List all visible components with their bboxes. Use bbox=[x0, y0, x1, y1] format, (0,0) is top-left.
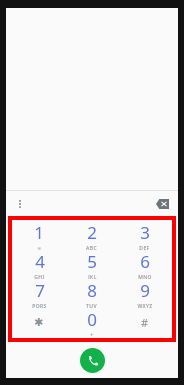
staticText: 6 bbox=[140, 250, 150, 273]
staticText: 5 bbox=[87, 250, 97, 273]
staticText: 8 bbox=[87, 279, 97, 302]
button[interactable]: 3 bbox=[118, 221, 171, 250]
staticText: TUV bbox=[86, 303, 97, 308]
button[interactable]: 5 bbox=[65, 250, 118, 279]
button[interactable]: 6 bbox=[118, 250, 171, 279]
button[interactable]: 9 bbox=[118, 279, 171, 308]
staticText: ABC bbox=[86, 245, 97, 250]
staticText: 4 bbox=[35, 250, 45, 273]
staticText: MNO bbox=[138, 274, 152, 279]
staticText: DEF bbox=[139, 245, 150, 250]
staticText: JKL bbox=[88, 274, 97, 279]
staticText: PQRS bbox=[32, 303, 47, 308]
staticText: + bbox=[90, 332, 94, 337]
button[interactable]: 1 bbox=[13, 221, 65, 250]
staticText: WXYZ bbox=[137, 303, 153, 308]
button[interactable]: 2 bbox=[65, 221, 118, 250]
staticText: 9 bbox=[140, 279, 150, 302]
staticText: # bbox=[141, 315, 149, 330]
button[interactable]: 4 bbox=[13, 250, 65, 279]
button[interactable]: Call bbox=[80, 348, 105, 373]
button[interactable]: ✱ bbox=[13, 308, 65, 337]
staticText: 1 bbox=[34, 221, 44, 244]
button[interactable]: 8 bbox=[65, 279, 118, 308]
staticText: GHI bbox=[34, 274, 45, 279]
button[interactable]: More options bbox=[10, 194, 30, 214]
staticText: 2 bbox=[87, 221, 97, 244]
staticText: ✱ bbox=[34, 316, 44, 329]
staticText: 7 bbox=[35, 279, 45, 302]
staticText: 0 bbox=[87, 308, 97, 331]
staticText: ∞ bbox=[37, 245, 42, 250]
button[interactable]: 7 bbox=[13, 279, 65, 308]
button[interactable]: # bbox=[118, 308, 171, 337]
button[interactable]: 0 bbox=[65, 308, 118, 337]
button[interactable]: Backspace bbox=[152, 194, 172, 214]
staticText: 3 bbox=[140, 221, 150, 244]
